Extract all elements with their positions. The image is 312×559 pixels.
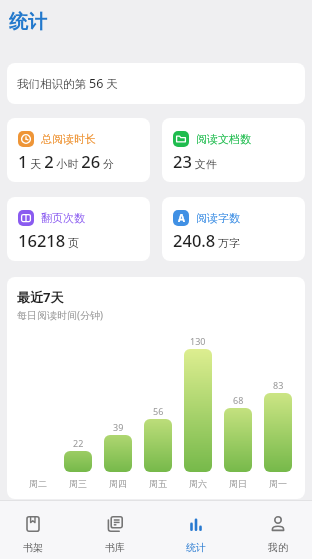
staticText: 最近7天 bbox=[17, 288, 64, 306]
staticText: 翻页次数 bbox=[41, 211, 85, 225]
staticText: 22 bbox=[73, 437, 84, 449]
staticText: 83 bbox=[273, 379, 284, 391]
staticText: 周五 bbox=[138, 478, 178, 489]
button[interactable]: 阅读文档数 bbox=[162, 118, 305, 182]
staticText: 39 bbox=[113, 421, 124, 433]
staticText: 1 天 2 小时 26 分 bbox=[18, 150, 115, 172]
staticText: 我的 bbox=[268, 541, 288, 554]
staticText: 周三 bbox=[58, 478, 98, 489]
staticText: 56 bbox=[153, 405, 164, 417]
button[interactable]: 翻页次数 bbox=[7, 197, 150, 261]
staticText: 68 bbox=[233, 394, 244, 406]
staticText: 阅读文档数 bbox=[196, 132, 251, 146]
staticText: 阅读字数 bbox=[196, 211, 240, 225]
button[interactable]: 书库 bbox=[93, 501, 137, 559]
button[interactable]: A bbox=[162, 197, 305, 261]
staticText: 130 bbox=[190, 335, 206, 347]
button[interactable]: 我的 bbox=[256, 501, 300, 559]
staticText: 书库 bbox=[105, 541, 125, 554]
button[interactable]: 书架 bbox=[11, 501, 55, 559]
staticText: 我们相识的第 56 天 bbox=[17, 75, 118, 92]
staticText: 每日阅读时间(分钟) bbox=[17, 308, 103, 322]
staticText: 周六 bbox=[178, 478, 218, 489]
button[interactable]: 统计 bbox=[174, 501, 218, 559]
staticText: 23 文件 bbox=[173, 150, 217, 172]
staticText: 周一 bbox=[258, 478, 298, 489]
staticText: 周日 bbox=[218, 478, 258, 489]
staticText: 16218 页 bbox=[18, 229, 80, 251]
staticText: 240.8 万字 bbox=[173, 229, 241, 251]
staticText: 周四 bbox=[98, 478, 138, 489]
staticText: A bbox=[178, 211, 185, 225]
staticText: 周二 bbox=[18, 478, 58, 489]
staticText: 总阅读时长 bbox=[41, 132, 96, 146]
staticText: 书架 bbox=[23, 541, 43, 554]
staticText: 统计 bbox=[186, 541, 206, 554]
staticText: 统计 bbox=[9, 10, 47, 34]
button[interactable]: 总阅读时长 bbox=[7, 118, 150, 182]
button[interactable]: 我们相识的第 56 天 bbox=[7, 63, 305, 104]
